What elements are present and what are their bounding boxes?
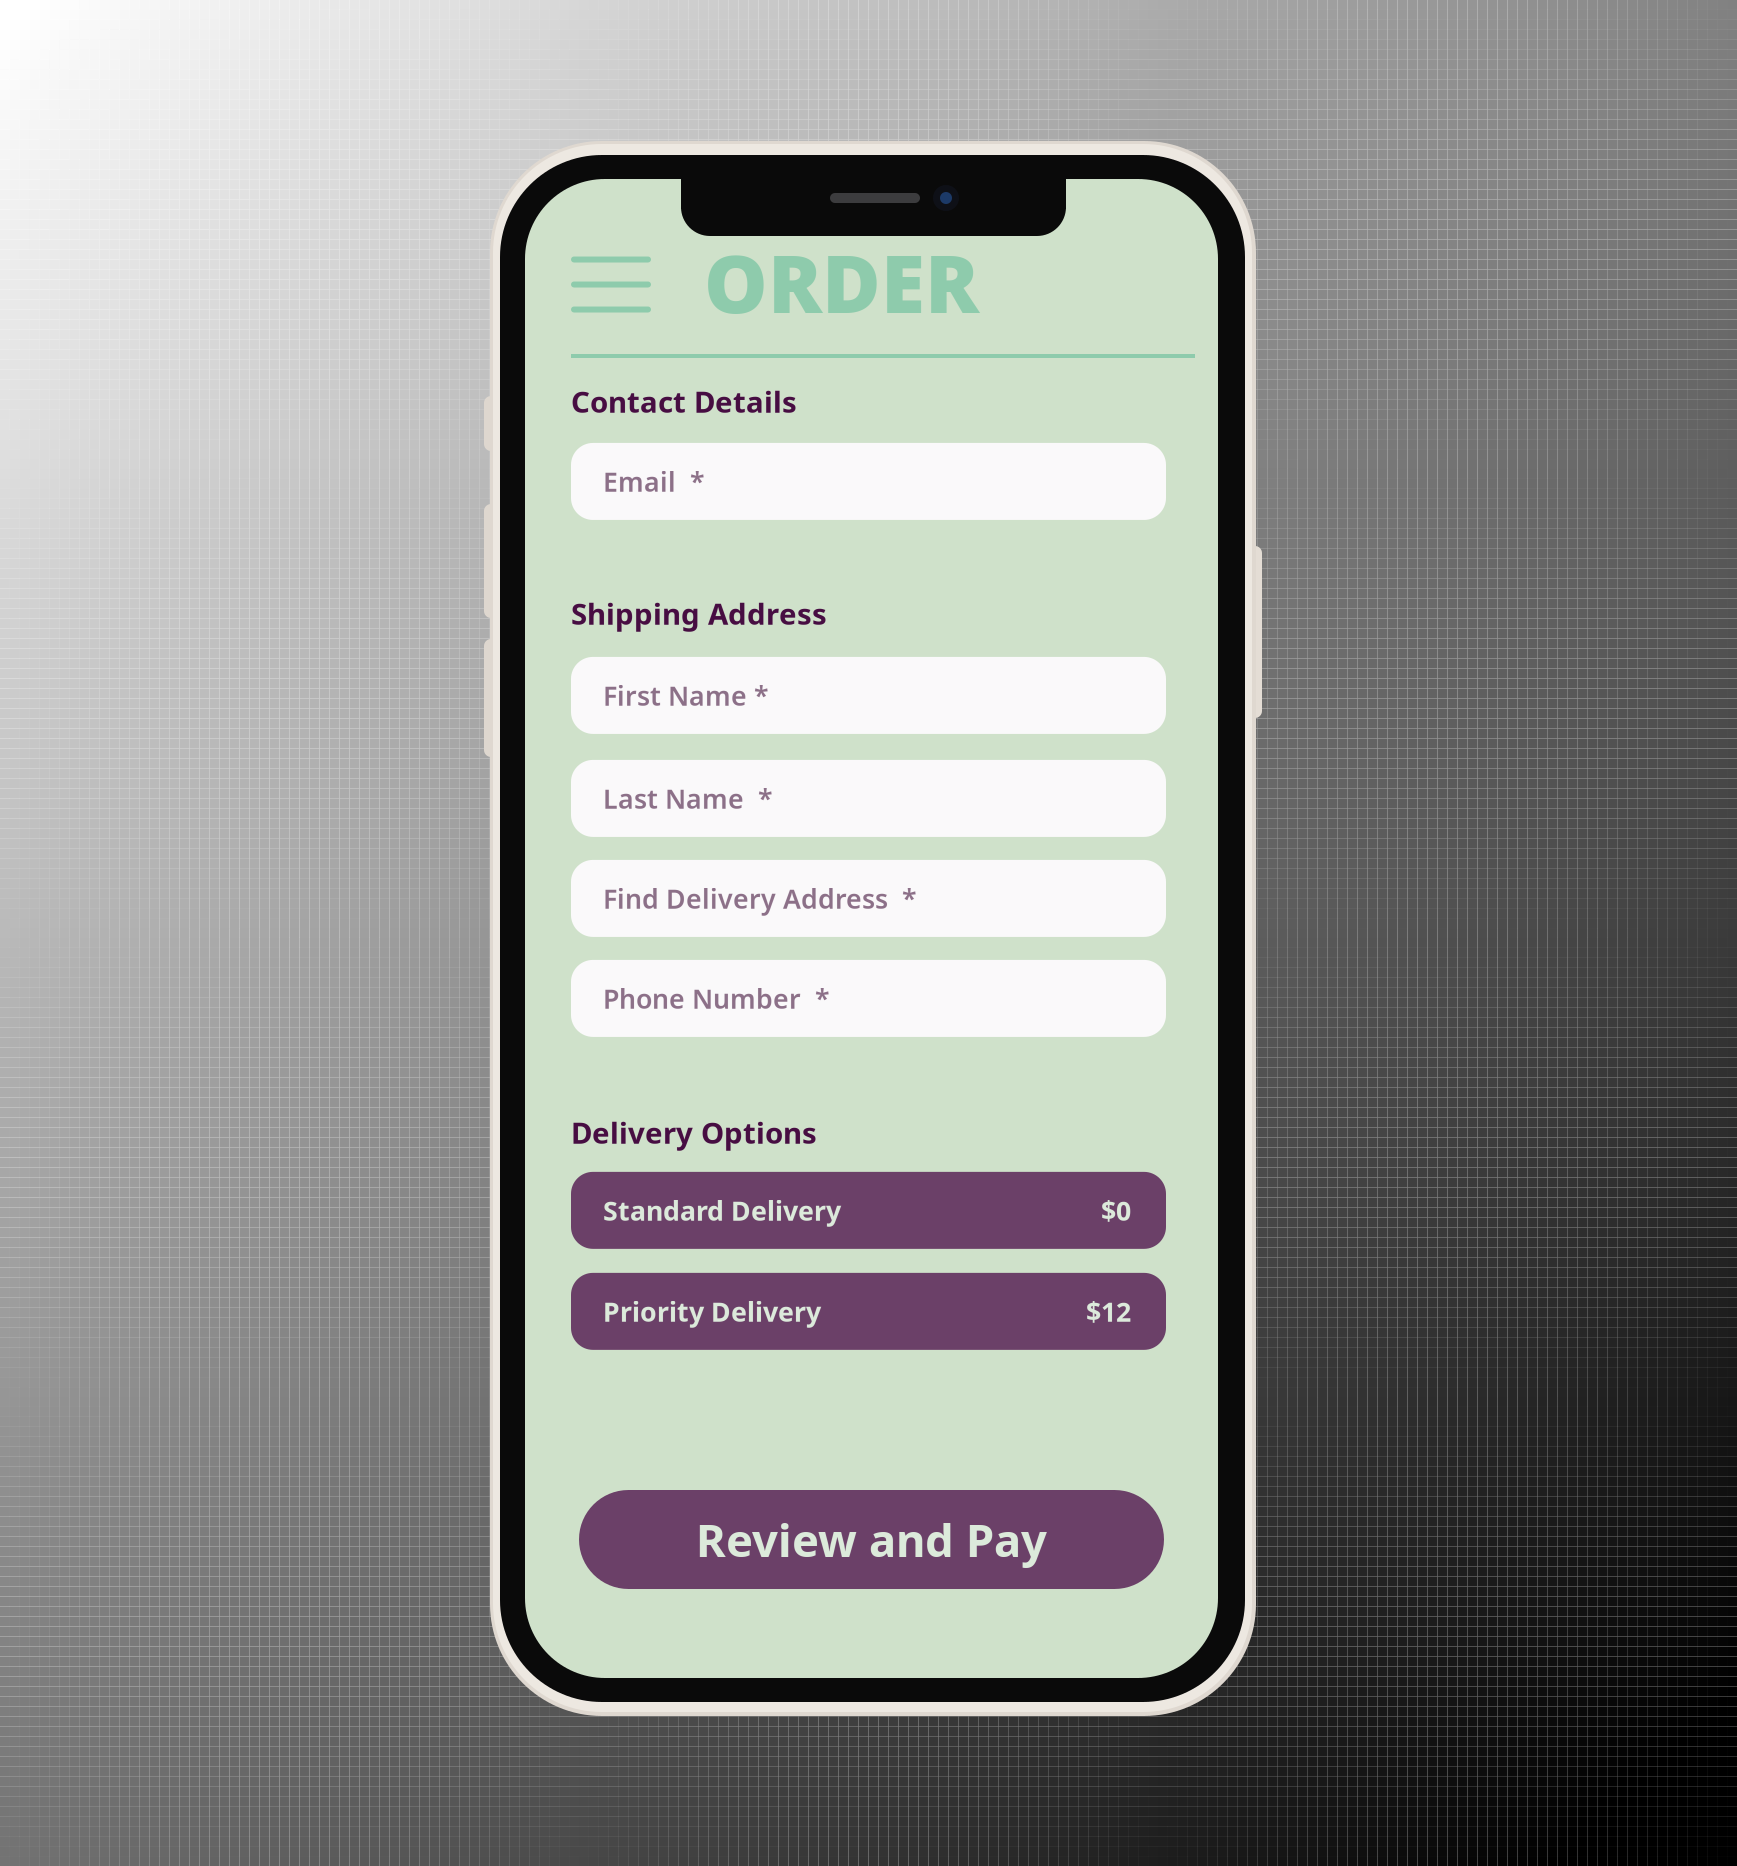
button[interactable]: Standard Delivery: [571, 1172, 1166, 1249]
button[interactable]: Review and Pay: [579, 1490, 1164, 1589]
button[interactable]: Email *: [571, 443, 1166, 520]
staticText: Last Name *: [603, 781, 773, 816]
staticText: Contact Details: [571, 382, 797, 421]
staticText: Email *: [603, 464, 705, 499]
staticText: $12: [1086, 1294, 1131, 1329]
staticText: $0: [1101, 1193, 1131, 1228]
staticText: Phone Number *: [603, 981, 830, 1016]
button[interactable]: Phone Number *: [571, 960, 1166, 1037]
staticText: Find Delivery Address *: [603, 881, 917, 916]
button[interactable]: Last Name *: [571, 760, 1166, 837]
staticText: First Name *: [603, 678, 769, 713]
staticText: ORDER: [704, 229, 979, 335]
button[interactable]: Find Delivery Address *: [571, 860, 1166, 937]
button[interactable]: Menu: [571, 251, 651, 312]
button[interactable]: First Name *: [571, 657, 1166, 734]
staticText: Delivery Options: [571, 1113, 817, 1152]
staticText: Review and Pay: [696, 1509, 1047, 1570]
staticText: Standard Delivery: [603, 1193, 841, 1228]
staticText: Shipping Address: [571, 594, 827, 633]
button[interactable]: Priority Delivery: [571, 1273, 1166, 1350]
staticText: Priority Delivery: [603, 1294, 821, 1329]
